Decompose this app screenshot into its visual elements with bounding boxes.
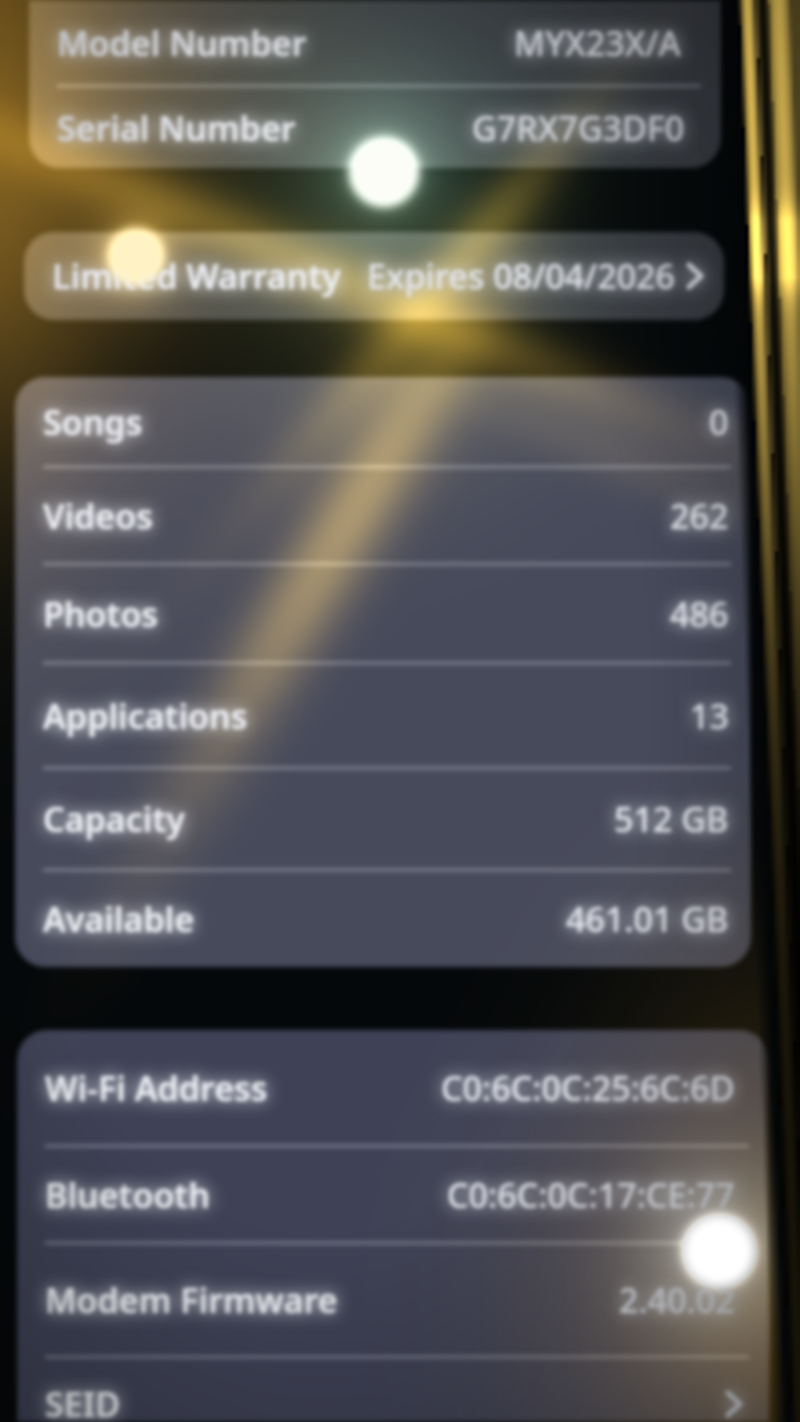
- staticText: MYX23X/A: [514, 20, 681, 66]
- staticText: 2.40.02: [619, 1277, 735, 1323]
- button[interactable]: Applications: [15, 664, 751, 767]
- staticText: 262: [670, 493, 729, 539]
- staticText: G7RX7G3DF0: [472, 105, 685, 151]
- button[interactable]: Bluetooth: [17, 1147, 769, 1242]
- staticText: Expires 08/04/2026: [367, 253, 676, 299]
- staticText: Model Number: [57, 20, 307, 66]
- staticText: Bluetooth: [45, 1172, 210, 1218]
- staticText: SEID: [45, 1381, 121, 1422]
- staticText: G7RX7G3DF0: [472, 105, 685, 151]
- staticText: Wi-Fi Address: [45, 1065, 268, 1111]
- button[interactable]: SEID: [17, 1358, 769, 1422]
- staticText: Available: [43, 896, 195, 942]
- staticText: Songs: [43, 399, 143, 445]
- staticText: 13: [690, 693, 729, 739]
- button[interactable]: Limited Warranty: [24, 232, 724, 320]
- staticText: MYX23X/A: [514, 20, 681, 66]
- staticText: 486: [670, 591, 729, 637]
- button[interactable]: Wi-Fi Address: [17, 1030, 769, 1145]
- staticText: Serial Number: [57, 105, 296, 151]
- button[interactable]: Modem Firmware: [17, 1244, 769, 1356]
- staticText: Videos: [43, 493, 153, 539]
- staticText: Expires 08/04/2026: [367, 253, 676, 299]
- staticText: 512 GB: [614, 796, 729, 842]
- staticText: 461.01 GB: [566, 896, 729, 942]
- staticText: Capacity: [43, 796, 185, 842]
- staticText: Photos: [43, 591, 159, 637]
- staticText: Limited Warranty: [52, 253, 341, 299]
- button[interactable]: Photos: [15, 565, 751, 662]
- staticText: Serial Number: [57, 105, 296, 151]
- button[interactable]: Videos: [15, 468, 751, 563]
- staticText: C0:6C:0C:17:CE:77: [447, 1172, 735, 1218]
- staticText: 13: [690, 693, 729, 739]
- staticText: Limited Warranty: [52, 253, 341, 299]
- staticText: 486: [670, 591, 729, 637]
- staticText: 461.01 GB: [566, 896, 729, 942]
- staticText: 2.40.02: [619, 1277, 735, 1323]
- staticText: Bluetooth: [45, 1172, 210, 1218]
- staticText: SEID: [45, 1381, 121, 1422]
- staticText: Modem Firmware: [45, 1277, 338, 1323]
- staticText: C0:6C:0C:25:6C:6D: [441, 1065, 735, 1111]
- staticText: Applications: [43, 693, 248, 739]
- staticText: Modem Firmware: [45, 1277, 338, 1323]
- staticText: Photos: [43, 591, 159, 637]
- button[interactable]: Songs: [15, 377, 751, 466]
- staticText: C0:6C:0C:17:CE:77: [447, 1172, 735, 1218]
- button[interactable]: Serial Number: [29, 87, 721, 168]
- staticText: Applications: [43, 693, 248, 739]
- staticText: Available: [43, 896, 195, 942]
- staticText: Videos: [43, 493, 153, 539]
- staticText: 0: [709, 399, 729, 445]
- button[interactable]: Capacity: [15, 769, 751, 869]
- other: Open details: [727, 1392, 741, 1416]
- staticText: Wi-Fi Address: [45, 1065, 268, 1111]
- button[interactable]: Model Number: [29, 0, 721, 85]
- staticText: Songs: [43, 399, 143, 445]
- staticText: C0:6C:0C:25:6C:6D: [441, 1065, 735, 1111]
- other: Open details: [688, 264, 702, 288]
- button[interactable]: Available: [15, 871, 751, 967]
- staticText: Capacity: [43, 796, 185, 842]
- staticText: 262: [670, 493, 729, 539]
- staticText: 0: [709, 399, 729, 445]
- staticText: Model Number: [57, 20, 307, 66]
- staticText: 512 GB: [614, 796, 729, 842]
